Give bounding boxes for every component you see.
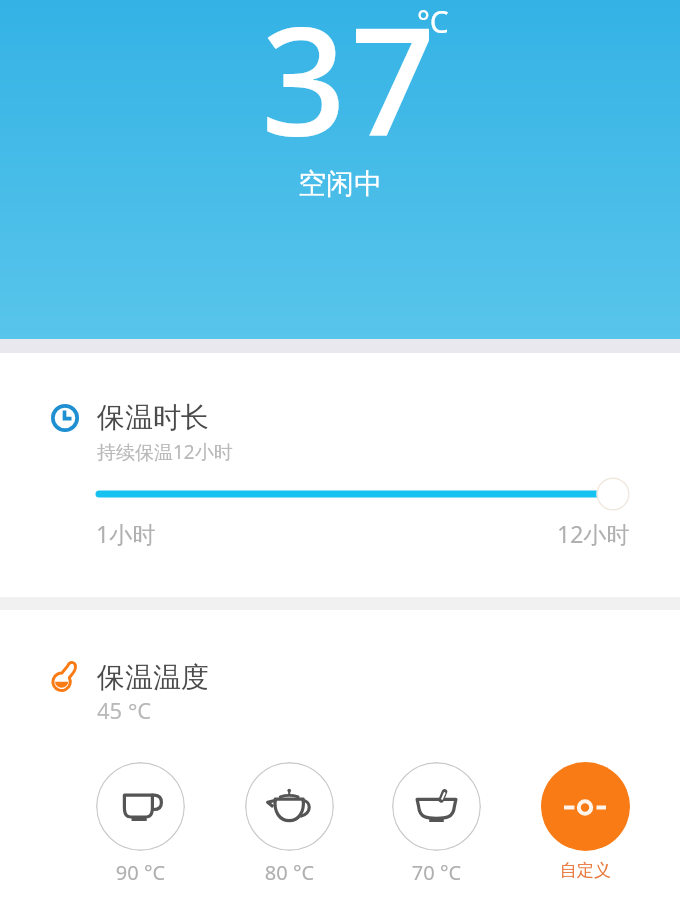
button[interactable]: 自定义 (541, 762, 630, 851)
button[interactable]: 70 °C (392, 762, 481, 851)
staticText: 80 °C (245, 859, 334, 886)
staticText: 45 °C (97, 695, 152, 725)
staticText: 12小时 (557, 518, 630, 549)
button[interactable]: 保温时长滑块 (80, 474, 630, 514)
staticText: 保温温度 (97, 660, 209, 695)
staticText: 自定义 (541, 860, 630, 881)
staticText: 37 (261, 0, 440, 180)
staticText: 1小时 (96, 518, 156, 549)
staticText: 保温时长 (97, 400, 209, 435)
button[interactable]: 80 °C (245, 762, 334, 851)
staticText: °C (417, 1, 449, 42)
staticText: 90 °C (96, 859, 185, 886)
button[interactable]: 90 °C (96, 762, 185, 851)
staticText: 持续保温12小时 (97, 439, 233, 465)
button[interactable]: 保温时长 (0, 383, 680, 469)
button[interactable]: 保温温度 (0, 642, 680, 728)
staticText: 70 °C (392, 859, 481, 886)
staticText: 空闲中 (0, 166, 680, 201)
